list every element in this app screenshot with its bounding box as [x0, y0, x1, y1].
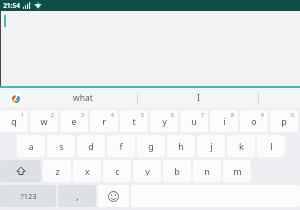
button[interactable]: q [0, 110, 28, 132]
button[interactable]: z [43, 160, 71, 182]
button[interactable]: c [103, 160, 131, 182]
button[interactable]: u [180, 110, 208, 132]
staticText: 4 [111, 112, 114, 119]
staticText: , [76, 190, 79, 202]
staticText: I [197, 92, 200, 104]
button[interactable]: what [28, 88, 137, 108]
staticText: 9 [261, 112, 264, 119]
staticText: 3 [81, 112, 84, 119]
staticText: u [191, 115, 197, 127]
button[interactable]: I [138, 88, 258, 108]
staticText: s [59, 140, 64, 152]
button[interactable]: d [77, 135, 105, 157]
staticText: t [132, 115, 136, 127]
staticText: ?123 [20, 191, 37, 201]
button[interactable]: r [90, 110, 118, 132]
staticText: v [145, 165, 150, 177]
staticText: h [178, 140, 184, 152]
button[interactable]: y [150, 110, 178, 132]
button[interactable]: h [167, 135, 195, 157]
staticText: z [55, 165, 60, 177]
button[interactable]: a [17, 135, 45, 157]
staticText: y [162, 115, 167, 127]
button[interactable]: e [60, 110, 88, 132]
button[interactable]: l [257, 135, 285, 157]
button[interactable]: Google search [9, 92, 22, 105]
staticText: 21:54 [3, 1, 20, 10]
button[interactable]: i [210, 110, 238, 132]
staticText: 2 [51, 112, 54, 119]
button[interactable]: p [270, 110, 298, 132]
staticText: e [71, 115, 77, 127]
staticText: l [270, 140, 273, 152]
button[interactable]: f [107, 135, 135, 157]
staticText: d [88, 140, 94, 152]
staticText: w [40, 115, 48, 127]
button[interactable]: v [133, 160, 161, 182]
staticText: 1 [21, 112, 24, 119]
staticText: 6 [171, 112, 174, 119]
staticText: b [174, 165, 180, 177]
staticText: p [281, 115, 287, 127]
staticText: 8 [231, 112, 234, 119]
button[interactable]: Emoji [98, 185, 129, 207]
staticText: 0 [291, 112, 294, 119]
button[interactable]: g [137, 135, 165, 157]
staticText: k [239, 140, 244, 152]
button[interactable]: o [240, 110, 268, 132]
button[interactable]: ?123 [0, 185, 56, 207]
button[interactable]: k [227, 135, 255, 157]
staticText: f [119, 140, 123, 152]
staticText: q [11, 115, 17, 127]
staticText: x [85, 165, 90, 177]
button[interactable]: t [120, 110, 148, 132]
staticText: o [251, 115, 257, 127]
staticText: n [204, 165, 210, 177]
button[interactable]: j [197, 135, 225, 157]
staticText: 7 [201, 112, 204, 119]
button[interactable]: s [47, 135, 75, 157]
button[interactable]: Shift [0, 160, 41, 182]
button[interactable]: b [163, 160, 191, 182]
staticText: what [73, 92, 93, 104]
staticText: a [28, 140, 34, 152]
staticText: c [115, 165, 120, 177]
button[interactable]: x [73, 160, 101, 182]
button[interactable]: m [223, 160, 251, 182]
staticText: i [223, 115, 226, 127]
button[interactable]: w [30, 110, 58, 132]
staticText: j [210, 140, 213, 152]
button[interactable]: , [58, 185, 96, 207]
button[interactable]: n [193, 160, 221, 182]
staticText: 5 [141, 112, 144, 119]
staticText: r [102, 115, 106, 127]
staticText: m [233, 165, 242, 177]
staticText: g [148, 140, 154, 152]
